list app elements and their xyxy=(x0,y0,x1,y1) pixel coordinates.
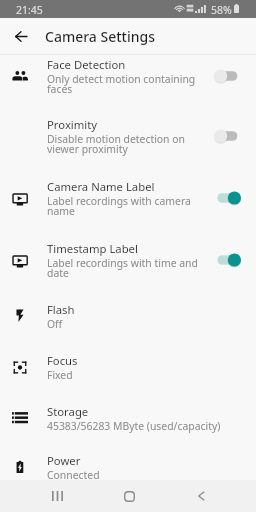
button[interactable]: Back xyxy=(180,480,222,512)
button[interactable]: Camera Name Label xyxy=(0,177,256,239)
button[interactable]: Storage xyxy=(0,402,256,452)
button[interactable]: Face Detection xyxy=(0,54,256,116)
staticText: Label recordings with time and date xyxy=(47,256,209,280)
button[interactable]: Back xyxy=(8,24,33,49)
staticText: Flash xyxy=(47,305,75,317)
staticText: Camera Settings xyxy=(45,27,155,46)
staticText: 21:45 xyxy=(16,3,43,17)
staticText: Proximity xyxy=(47,120,98,132)
staticText: Label recordings with camera name xyxy=(47,194,209,218)
staticText: 45383/56283 MByte (used/capacity) xyxy=(47,419,221,433)
staticText: Off xyxy=(47,317,63,331)
button[interactable]: Recent apps xyxy=(36,480,78,512)
button[interactable]: Toggle xyxy=(214,253,242,267)
button[interactable]: Toggle xyxy=(214,191,242,205)
staticText: Disable motion detection on viewer proxi… xyxy=(47,132,209,156)
staticText: Storage xyxy=(47,407,89,419)
button[interactable]: Power xyxy=(0,452,256,502)
button[interactable]: Timestamp Label xyxy=(0,239,256,301)
button[interactable]: Flash xyxy=(0,301,256,351)
staticText: 58% xyxy=(211,3,232,17)
staticText: Focus xyxy=(47,356,78,368)
staticText: Power xyxy=(47,456,81,468)
button[interactable]: Focus xyxy=(0,352,256,402)
button[interactable]: Home xyxy=(108,480,150,512)
staticText: Fixed xyxy=(47,368,73,382)
button[interactable]: Toggle xyxy=(214,129,242,143)
staticText: Face Detection xyxy=(47,60,126,72)
staticText: Timestamp Label xyxy=(47,244,138,256)
staticText: Only detect motion containing faces xyxy=(47,72,209,96)
button[interactable]: Toggle xyxy=(214,69,242,83)
staticText: Connected xyxy=(47,468,100,482)
staticText: Camera Name Label xyxy=(47,182,155,194)
button[interactable]: Proximity xyxy=(0,115,256,177)
